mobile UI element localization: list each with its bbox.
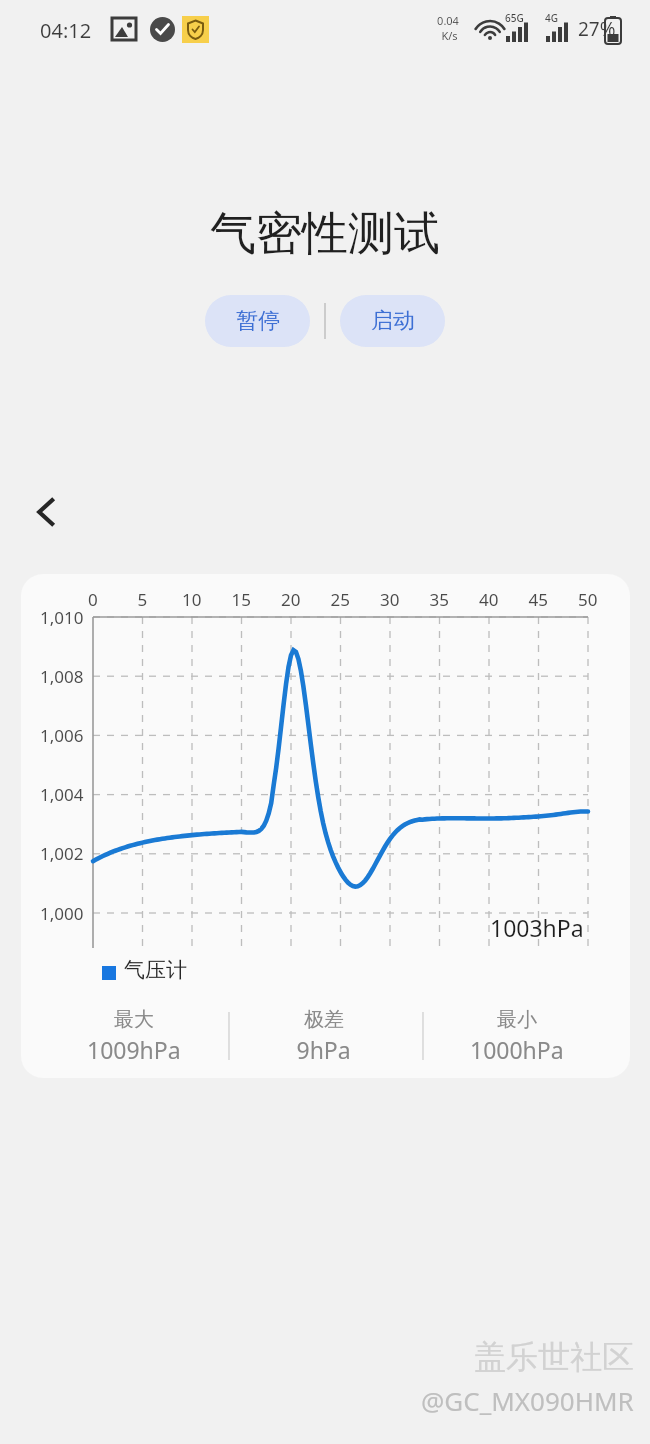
button[interactable]: 启动 — [340, 295, 445, 347]
staticText: 气密性测试 — [210, 205, 440, 263]
staticText: 暂停 — [236, 307, 280, 335]
staticText: @GC_MX090HMR — [421, 1383, 634, 1418]
button[interactable]: 暂停 — [205, 295, 310, 347]
staticText: 盖乐世社区 — [474, 1337, 634, 1377]
button[interactable]: Back — [14, 480, 78, 544]
staticText: 启动 — [371, 307, 415, 335]
button[interactable] — [21, 574, 630, 1078]
